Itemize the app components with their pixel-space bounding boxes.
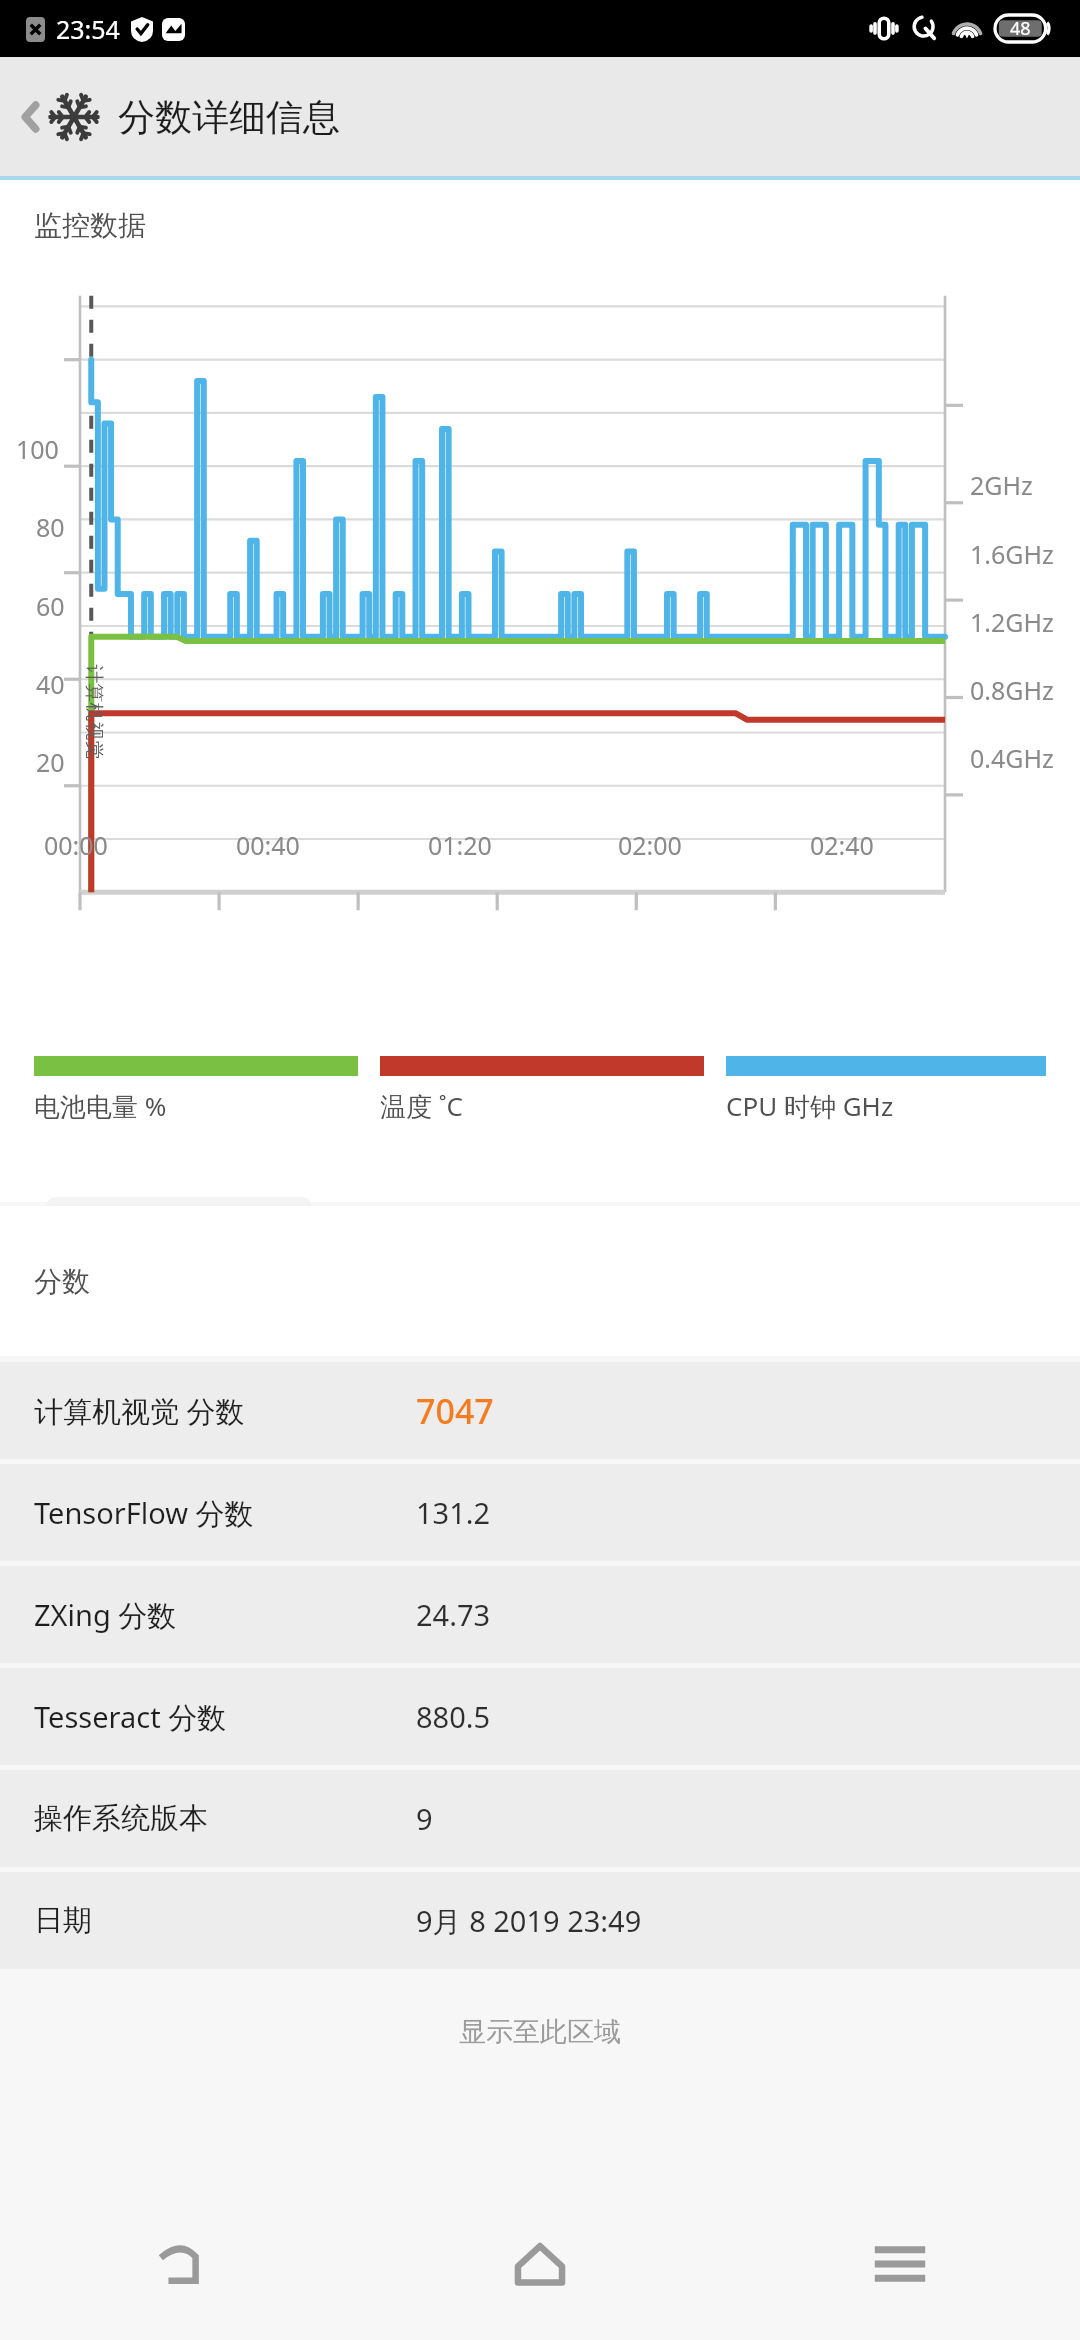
staticText: ZXing 分数: [34, 1595, 177, 1635]
staticText: 23:54: [56, 12, 120, 46]
button[interactable]: Back: [0, 2188, 360, 2340]
staticText: 9: [416, 1799, 433, 1838]
button[interactable]: Tesseract 分数: [0, 1668, 1080, 1765]
button[interactable]: Menu: [720, 2188, 1080, 2340]
staticText: 操作系统版本: [34, 1800, 208, 1837]
button[interactable]: Home: [360, 2188, 720, 2340]
staticText: 计算机视觉: [81, 664, 105, 759]
staticText: 40: [36, 667, 65, 701]
button[interactable]: Back: [12, 77, 346, 157]
staticText: 日期: [34, 1902, 92, 1939]
button[interactable]: ZXing 分数: [0, 1566, 1080, 1663]
staticText: 监控数据: [34, 208, 146, 243]
staticText: 02:00: [618, 828, 682, 862]
staticText: 温度 ˚C: [380, 1088, 463, 1124]
staticText: 1.2GHz: [970, 605, 1054, 639]
staticText: 计算机视觉 分数: [34, 1391, 245, 1431]
staticText: 00:40: [236, 828, 300, 862]
staticText: 01:20: [428, 828, 492, 862]
button[interactable]: 日期: [0, 1872, 1080, 1969]
button[interactable]: 详细图表: [46, 1197, 312, 1320]
staticText: 02:40: [810, 828, 874, 862]
button[interactable]: 计算机视觉 分数: [0, 1362, 1080, 1459]
staticText: 80: [36, 510, 65, 544]
staticText: 7047: [416, 1388, 494, 1434]
button[interactable]: TensorFlow 分数: [0, 1464, 1080, 1561]
staticText: 分数详细信息: [118, 94, 340, 141]
staticText: 880.5: [416, 1697, 491, 1736]
staticText: 48: [1010, 16, 1031, 41]
staticText: 1.6GHz: [970, 537, 1054, 571]
staticText: 20: [36, 745, 65, 779]
staticText: 电池电量 %: [34, 1088, 167, 1124]
staticText: 100: [16, 432, 59, 466]
staticText: 24.73: [416, 1595, 491, 1634]
staticText: CPU 时钟 GHz: [726, 1088, 894, 1124]
staticText: 0.4GHz: [970, 741, 1054, 775]
staticText: 9月 8 2019 23:49: [416, 1901, 642, 1941]
staticText: 0.8GHz: [970, 673, 1054, 707]
staticText: 2GHz: [970, 468, 1033, 502]
staticText: 分数: [34, 1264, 90, 1299]
staticText: 显示至此区域: [0, 2015, 1080, 2049]
staticText: 00:00: [44, 828, 108, 862]
staticText: TensorFlow 分数: [34, 1493, 254, 1533]
staticText: Tesseract 分数: [34, 1697, 227, 1737]
button[interactable]: 操作系统版本: [0, 1770, 1080, 1867]
staticText: 131.2: [416, 1493, 491, 1532]
staticText: 60: [36, 589, 65, 623]
